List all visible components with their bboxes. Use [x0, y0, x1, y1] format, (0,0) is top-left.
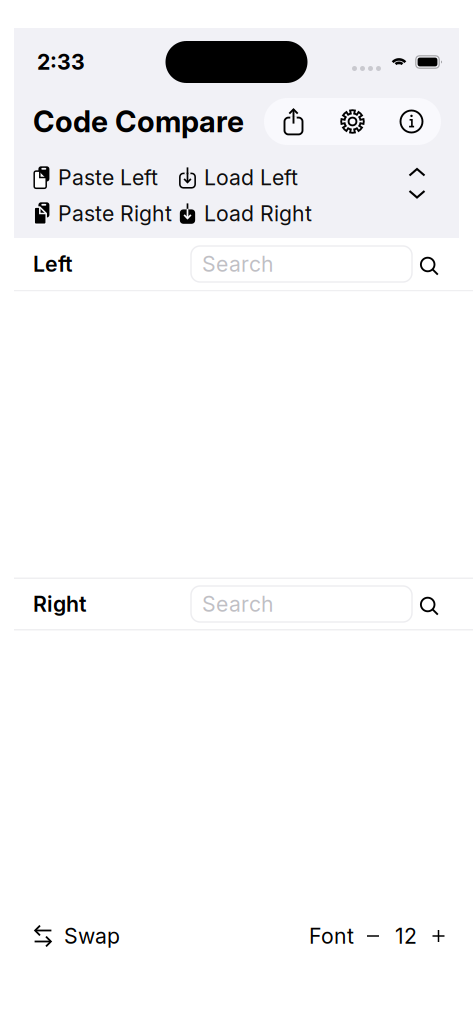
staticText: Font	[309, 923, 354, 949]
button[interactable]: Search	[418, 252, 440, 276]
staticText: Load Right	[204, 201, 312, 226]
staticText: Load Left	[204, 165, 298, 190]
button[interactable]: Load Right	[179, 197, 318, 229]
button[interactable]: Info	[382, 98, 441, 145]
staticText: Search	[202, 591, 274, 617]
staticText: 12	[395, 923, 417, 949]
button[interactable]: Settings	[323, 98, 382, 145]
staticText: Right	[33, 591, 87, 617]
button[interactable]: Search field	[191, 246, 412, 282]
button[interactable]: Search field	[191, 586, 412, 622]
button[interactable]: Search	[418, 592, 440, 616]
staticText: Code Compare	[33, 104, 244, 139]
staticText: Swap	[64, 923, 120, 949]
button[interactable]: Load Left	[179, 161, 318, 193]
button[interactable]: Paste Left	[33, 161, 179, 193]
staticText: Paste Right	[58, 201, 172, 226]
button[interactable]: Swap	[34, 914, 120, 958]
button[interactable]: Increase font size	[420, 916, 457, 956]
button[interactable]: Collapse	[408, 167, 426, 177]
button[interactable]: Decrease font size	[354, 916, 392, 956]
button[interactable]: Paste Right	[33, 197, 179, 229]
button[interactable]: Share	[264, 98, 323, 145]
staticText: Left	[33, 251, 73, 277]
staticText: 2:33	[37, 49, 85, 75]
button[interactable]: Expand	[408, 189, 426, 199]
staticText: Search	[202, 251, 274, 277]
staticText: Paste Left	[58, 165, 158, 190]
